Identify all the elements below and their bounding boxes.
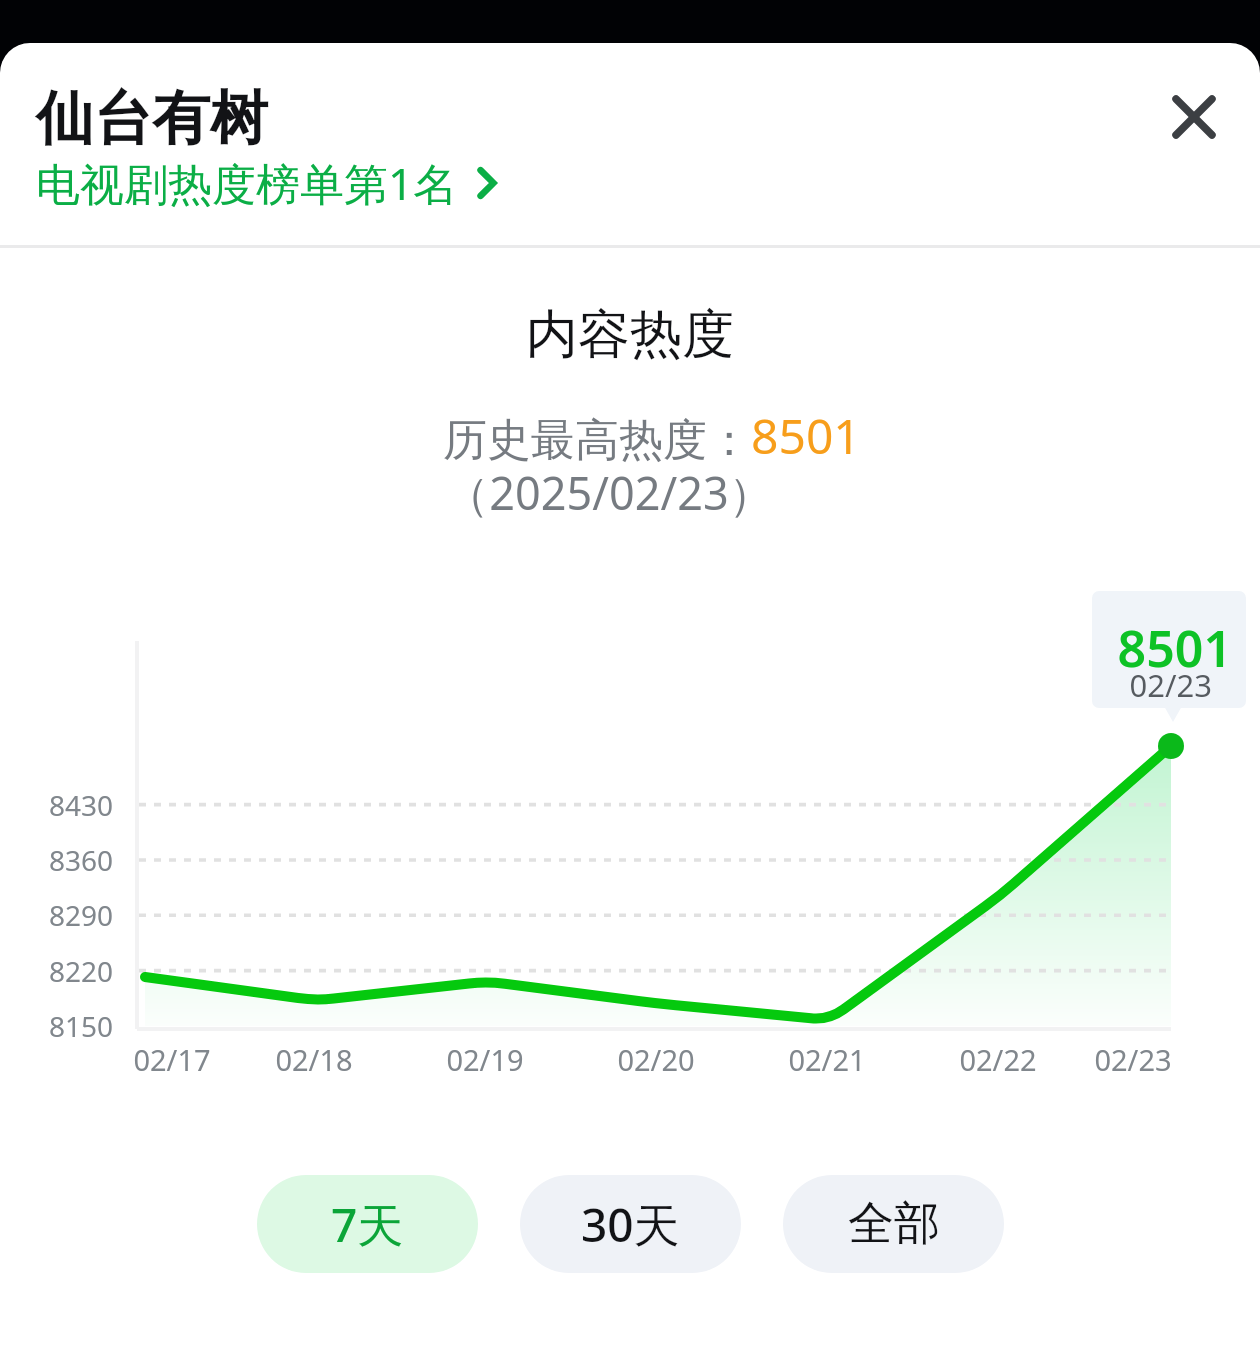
staticText: 内容热度 (0, 302, 1260, 368)
button[interactable]: 电视剧热度榜单第1名 (36, 153, 504, 213)
staticText: 8360 (31, 841, 113, 879)
staticText: 7天 (331, 1193, 404, 1256)
staticText: （2025/02/23） (0, 462, 1239, 523)
button[interactable]: Close (1161, 84, 1227, 150)
staticText: 历史最高热度： (443, 413, 751, 468)
staticText: 02/23 (1073, 1040, 1193, 1079)
staticText: 8501 (1092, 614, 1232, 682)
staticText: 02/19 (425, 1040, 545, 1079)
staticText: 8430 (31, 786, 113, 824)
staticText: 仙台有树 (36, 82, 268, 155)
staticText: 02/22 (938, 1040, 1058, 1079)
staticText: 02/18 (254, 1040, 374, 1079)
staticText: 02/17 (112, 1040, 232, 1079)
staticText: 8501 (751, 403, 861, 468)
staticText: 02/20 (596, 1040, 716, 1079)
staticText: 02/23 (1092, 664, 1212, 706)
staticText: 02/21 (767, 1040, 887, 1079)
staticText: 30天 (581, 1193, 680, 1256)
staticText: 电视剧热度榜单第1名 (36, 153, 458, 213)
button[interactable]: 7天 (257, 1175, 478, 1273)
staticText: 8290 (31, 896, 113, 934)
staticText: 8150 (31, 1007, 113, 1045)
staticText: 8220 (31, 952, 113, 990)
staticText: 全部 (848, 1195, 940, 1253)
button[interactable]: 全部 (783, 1175, 1004, 1273)
button[interactable]: 30天 (520, 1175, 741, 1273)
